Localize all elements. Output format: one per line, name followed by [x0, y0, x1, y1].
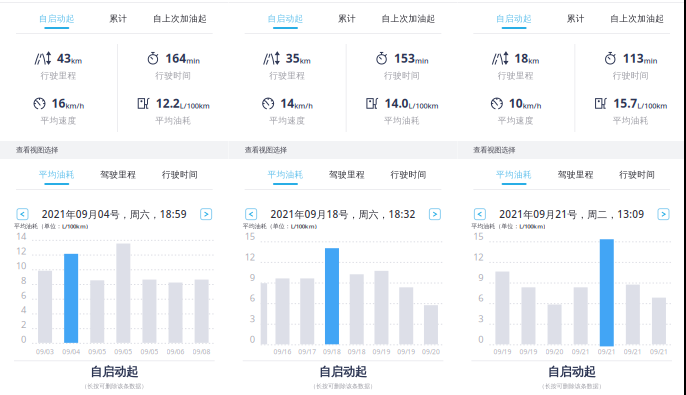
staticText: 平均油耗	[155, 115, 191, 126]
staticText: 自上次加油起	[610, 13, 664, 24]
button[interactable]: 累计	[88, 5, 149, 31]
staticText: 驾驶里程	[100, 169, 136, 180]
staticText: 09/19	[397, 347, 415, 356]
staticText: 09/20	[422, 347, 440, 356]
staticText: L/100km	[637, 101, 667, 111]
staticText: 12	[473, 250, 483, 263]
staticText: min	[186, 56, 200, 66]
staticText: 12.2	[156, 95, 180, 111]
staticText: 累计	[338, 13, 356, 24]
staticText: 09/21	[624, 347, 642, 356]
staticText: 14	[280, 95, 294, 111]
button[interactable]: 下一条	[201, 209, 212, 220]
staticText: 09/18	[348, 347, 366, 356]
button[interactable]: 自启动起	[26, 5, 88, 31]
staticText: 153	[394, 50, 415, 66]
staticText: 行驶里程	[269, 70, 305, 81]
staticText: 12	[16, 244, 26, 257]
staticText: （长按可删除该条数据）	[310, 382, 376, 390]
staticText: 累计	[109, 13, 127, 24]
staticText: km/h	[65, 101, 84, 111]
button[interactable]: 行驶时间	[149, 161, 211, 187]
staticText: 自启动起	[319, 364, 367, 379]
button[interactable]: 自启动起	[483, 5, 545, 31]
staticText: 查看视图选择	[16, 145, 58, 155]
staticText: min	[415, 56, 429, 66]
button[interactable]: 上一条	[17, 209, 28, 220]
staticText: 09/08	[193, 347, 211, 356]
staticText: 行驶里程	[498, 70, 534, 81]
staticText: 164	[165, 50, 186, 66]
staticText: km	[528, 56, 539, 66]
staticText: 行驶时间	[155, 70, 191, 81]
staticText: 14.0	[384, 95, 408, 111]
staticText: 12	[245, 250, 255, 263]
staticText: 行驶时间	[613, 70, 649, 81]
button[interactable]: 平均油耗	[26, 161, 88, 187]
button[interactable]: 自上次加油起	[149, 5, 211, 31]
staticText: 09/16	[273, 347, 291, 356]
button[interactable]: 下一条	[429, 209, 440, 220]
staticText: 平均油耗（单位：L/100km)	[471, 222, 545, 230]
staticText: L/100km	[180, 101, 210, 111]
staticText: 15.7	[613, 95, 637, 111]
staticText: 09/06	[166, 347, 184, 356]
staticText: 自上次加油起	[382, 13, 436, 24]
staticText: 18	[514, 50, 528, 66]
staticText: 09/05	[140, 347, 158, 356]
staticText: 14	[16, 230, 26, 242]
staticText: 0	[21, 333, 26, 345]
staticText: 平均油耗（单位：L/100km)	[243, 222, 317, 230]
staticText: 09/21	[598, 347, 616, 356]
staticText: （长按可删除该条数据）	[539, 382, 605, 390]
staticText: 行驶时间	[384, 70, 420, 81]
staticText: 6	[21, 289, 26, 301]
staticText: 驾驶里程	[329, 169, 365, 180]
button[interactable]: 驾驶里程	[88, 161, 149, 187]
button[interactable]: 驾驶里程	[545, 161, 606, 187]
staticText: （长按可删除该条数据）	[81, 382, 147, 390]
staticText: 15	[245, 230, 255, 242]
staticText: 平均速度	[269, 115, 305, 126]
staticText: 09/05	[114, 347, 132, 356]
staticText: 3	[478, 312, 483, 325]
staticText: 驾驶里程	[558, 169, 594, 180]
staticText: 0	[250, 333, 255, 345]
staticText: 09/04	[62, 347, 80, 356]
staticText: 09/18	[323, 347, 341, 356]
staticText: 09/17	[298, 347, 316, 356]
staticText: 平均油耗	[39, 169, 75, 180]
staticText: km/h	[294, 101, 313, 111]
button[interactable]: 平均油耗	[483, 161, 545, 187]
staticText: 查看视图选择	[245, 145, 287, 155]
staticText: 2021年09月04号，周六，18:59	[42, 207, 187, 221]
staticText: 09/19	[372, 347, 390, 356]
button[interactable]: 上一条	[474, 209, 485, 220]
staticText: 平均油耗	[496, 169, 532, 180]
staticText: 平均油耗	[267, 169, 303, 180]
button[interactable]: 平均油耗	[255, 161, 316, 187]
button[interactable]: 行驶时间	[378, 161, 439, 187]
staticText: 09/05	[88, 347, 106, 356]
button[interactable]: 行驶时间	[606, 161, 668, 187]
staticText: 15	[473, 230, 483, 242]
button[interactable]: 驾驶里程	[316, 161, 378, 187]
staticText: 3	[250, 312, 255, 325]
staticText: 09/19	[519, 347, 537, 356]
staticText: 113	[623, 50, 644, 66]
staticText: 平均速度	[40, 115, 76, 126]
button[interactable]: 下一条	[658, 209, 669, 220]
staticText: 6	[250, 292, 255, 304]
button[interactable]: 累计	[316, 5, 378, 31]
button[interactable]: 自上次加油起	[378, 5, 439, 31]
staticText: 9	[250, 271, 255, 284]
staticText: 行驶时间	[619, 169, 655, 180]
button[interactable]: 自启动起	[255, 5, 316, 31]
staticText: 行驶时间	[391, 169, 427, 180]
button[interactable]: 上一条	[246, 209, 257, 220]
staticText: 09/21	[650, 347, 668, 356]
button[interactable]: 自上次加油起	[606, 5, 668, 31]
button[interactable]: 累计	[545, 5, 606, 31]
staticText: 2021年09月18号，周六，18:32	[270, 207, 415, 221]
staticText: 行驶时间	[162, 169, 198, 180]
